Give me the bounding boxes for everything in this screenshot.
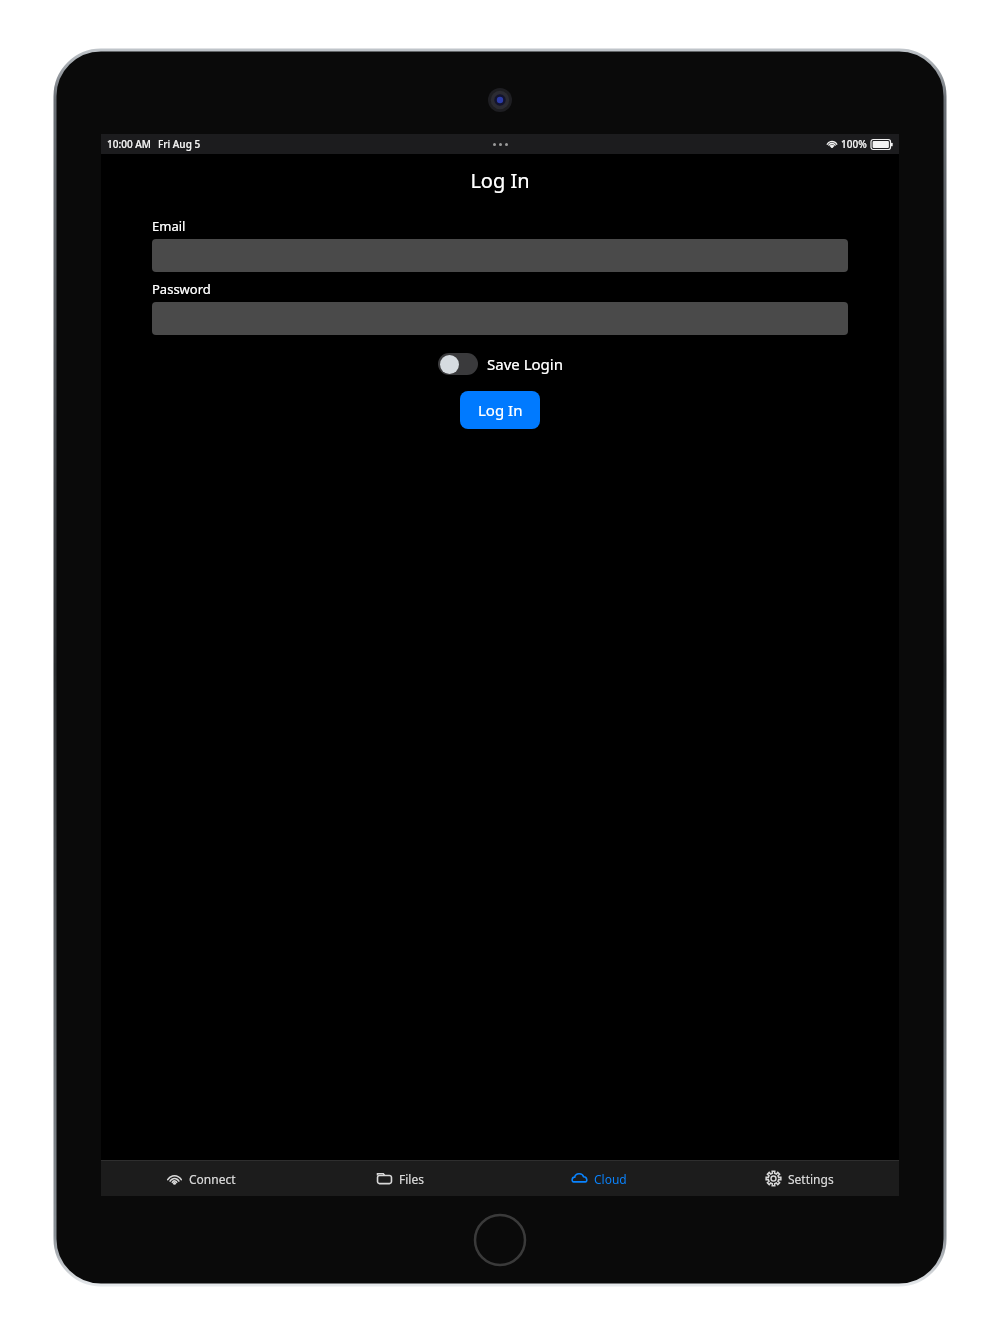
staticText: Save Login: [487, 354, 563, 374]
button[interactable]: Cloud: [499, 1161, 699, 1196]
staticText: Password: [152, 280, 211, 298]
button[interactable]: Save Login toggle: [438, 353, 478, 375]
staticText: Cloud: [594, 1171, 627, 1187]
staticText: Log In: [478, 400, 523, 420]
button[interactable]: Log In: [460, 391, 540, 429]
staticText: Files: [399, 1171, 424, 1187]
staticText: Settings: [788, 1171, 834, 1187]
staticText: 10:00 AM: [107, 137, 151, 151]
staticText: Email: [152, 217, 186, 235]
staticText: Connect: [189, 1171, 236, 1187]
staticText: Log In: [101, 167, 899, 194]
button[interactable]: Connect: [101, 1161, 300, 1196]
button[interactable]: Files: [300, 1161, 499, 1196]
staticText: Fri Aug 5: [158, 137, 201, 151]
button[interactable]: Settings: [699, 1161, 899, 1196]
staticText: 100%: [841, 137, 867, 151]
